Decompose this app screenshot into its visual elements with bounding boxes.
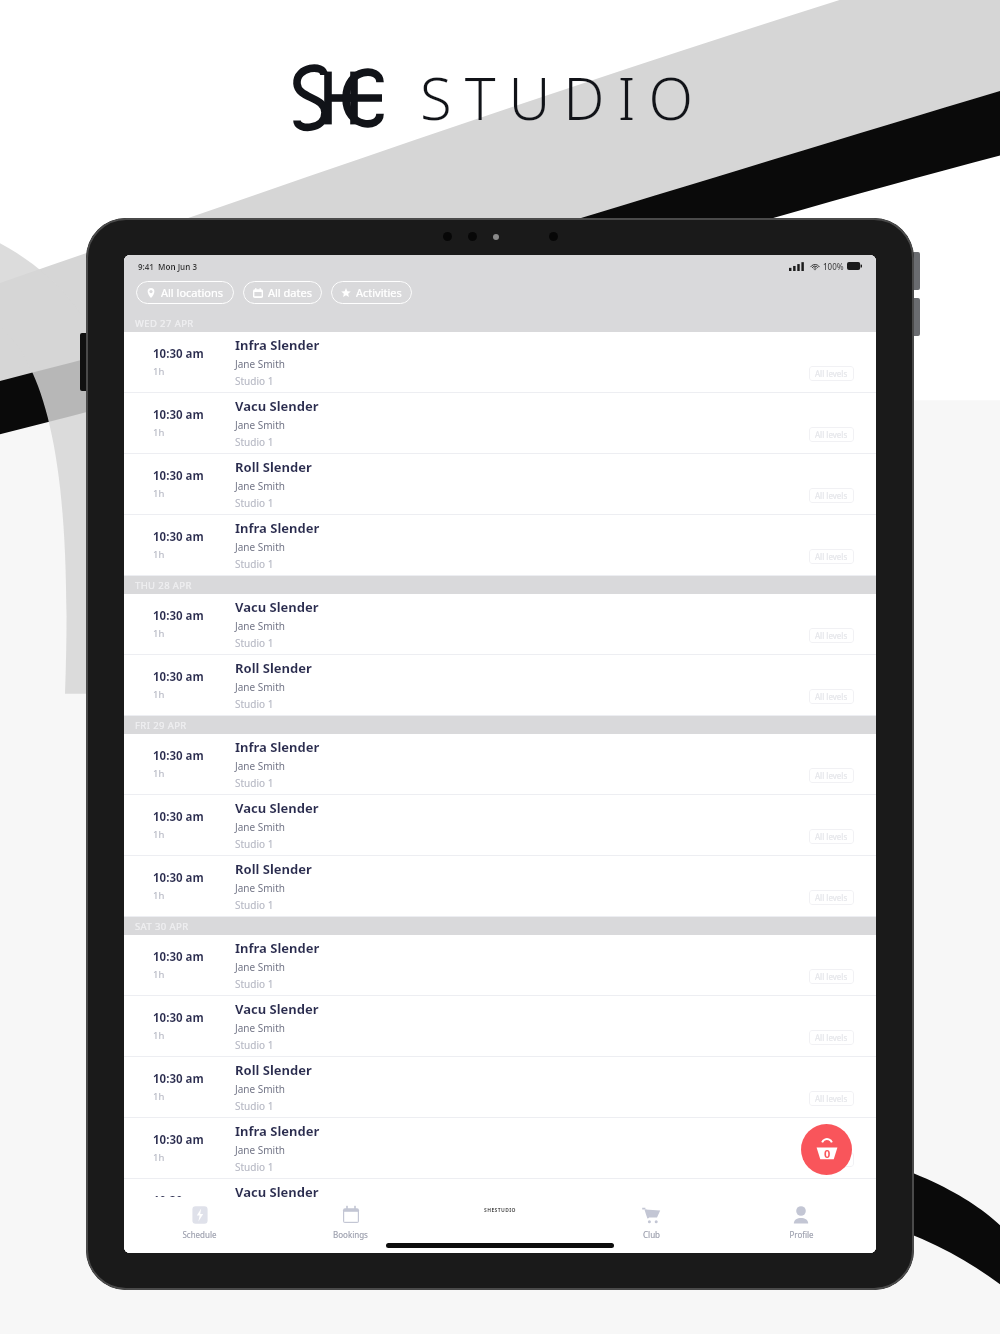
staticText: Jane Smith	[235, 1143, 285, 1157]
staticText: 10:30 am	[153, 468, 204, 484]
button[interactable]: All levels	[809, 628, 854, 643]
staticText: 1h	[153, 1090, 165, 1103]
staticText: Jane Smith	[235, 759, 285, 773]
staticText: Jane Smith	[235, 540, 285, 554]
staticText: All levels	[815, 1093, 848, 1104]
button[interactable]: All levels	[809, 768, 854, 783]
button[interactable]: 10:30 am	[124, 393, 876, 454]
staticText: 1h	[153, 426, 165, 439]
staticText: STUDIO	[420, 58, 706, 137]
button[interactable]: All levels	[809, 829, 854, 844]
button[interactable]: 10:30 am	[124, 454, 876, 515]
staticText: Vacu Slender	[235, 397, 319, 415]
staticText: 10:30 am	[153, 949, 204, 965]
button[interactable]: All levels	[809, 890, 854, 905]
staticText: 1h	[153, 365, 165, 378]
staticText: Studio 1	[235, 776, 274, 790]
staticText: 9:41 Mon Jun 3	[138, 261, 197, 272]
staticText: 10:30 am	[153, 748, 204, 764]
button[interactable]: 10:30 am	[124, 856, 876, 917]
staticText: Club	[643, 1229, 660, 1240]
button[interactable]: All levels	[809, 1030, 854, 1045]
button[interactable]: 10:30 am	[124, 594, 876, 655]
staticText: All levels	[815, 490, 848, 501]
button[interactable]: 10:30 am	[124, 515, 876, 576]
button[interactable]: SHE Studio home	[477, 1187, 523, 1233]
button[interactable]: 10:30 am	[124, 795, 876, 856]
button[interactable]: 10:30 am	[124, 655, 876, 716]
button[interactable]: 10:30 am	[124, 1179, 876, 1240]
button[interactable]: 10:30 am	[124, 996, 876, 1057]
staticText: 10:30 am	[153, 809, 204, 825]
staticText: All levels	[815, 1032, 848, 1043]
staticText: All locations	[161, 285, 224, 300]
staticText: Jane Smith	[235, 881, 285, 895]
button[interactable]: Schedule	[124, 1197, 275, 1253]
staticText: 1h	[153, 1151, 165, 1164]
staticText: 1h	[153, 487, 165, 500]
staticText: 1h	[153, 627, 165, 640]
staticText: All levels	[815, 971, 848, 982]
button[interactable]: All levels	[809, 427, 854, 442]
staticText: Schedule	[182, 1229, 217, 1240]
staticText: 10:30 am	[153, 407, 204, 423]
staticText: All levels	[815, 551, 848, 562]
button[interactable]: All dates	[243, 281, 322, 304]
button[interactable]: All levels	[809, 689, 854, 704]
staticText: 0	[824, 1146, 831, 1161]
staticText: 1h	[153, 889, 165, 902]
button[interactable]: Activities	[331, 281, 412, 304]
button[interactable]: All levels	[809, 366, 854, 381]
staticText: 100%	[823, 261, 844, 272]
staticText: Studio 1	[235, 636, 274, 650]
staticText: Studio 1	[235, 1160, 274, 1174]
staticText: All levels	[815, 630, 848, 641]
staticText: Roll Slender	[235, 1061, 312, 1079]
button[interactable]: All levels	[809, 549, 854, 564]
button[interactable]: 10:30 am	[124, 1057, 876, 1118]
staticText: Roll Slender	[235, 458, 312, 476]
button[interactable]: Basket, 0 items	[801, 1124, 852, 1175]
button[interactable]: All levels	[809, 969, 854, 984]
staticText: 10:30 am	[153, 870, 204, 886]
staticText: SAT 30 APR	[135, 920, 189, 933]
staticText: Jane Smith	[235, 1021, 285, 1035]
staticText: Infra Slender	[235, 939, 320, 957]
staticText: Infra Slender	[235, 336, 320, 354]
staticText: Activities	[356, 285, 402, 300]
button[interactable]: All levels	[809, 1091, 854, 1106]
staticText: 1h	[153, 968, 165, 981]
button[interactable]: Club	[576, 1197, 726, 1253]
staticText: 1h	[153, 688, 165, 701]
staticText: Jane Smith	[235, 357, 285, 371]
button[interactable]: All levels	[809, 488, 854, 503]
staticText: Studio 1	[235, 374, 274, 388]
button[interactable]: All locations	[136, 281, 234, 304]
button[interactable]: 10:30 am	[124, 332, 876, 393]
staticText: All levels	[815, 691, 848, 702]
staticText: Vacu Slender	[235, 1183, 319, 1201]
button[interactable]: All levels	[809, 1152, 854, 1167]
staticText: 10:30 am	[153, 608, 204, 624]
staticText: 10:30 am	[153, 1193, 204, 1209]
button[interactable]: Profile	[726, 1197, 876, 1253]
button[interactable]: 10:30 am	[124, 1118, 876, 1179]
button[interactable]: 10:30 am	[124, 935, 876, 996]
staticText: WED 27 APR	[135, 317, 194, 330]
staticText: 1h	[153, 548, 165, 561]
button[interactable]: Bookings	[275, 1197, 426, 1253]
staticText: Studio 1	[235, 697, 274, 711]
staticText: 1h	[153, 767, 165, 780]
staticText: All levels	[815, 831, 848, 842]
button[interactable]: 10:30 am	[124, 734, 876, 795]
staticText: Studio 1	[235, 557, 274, 571]
staticText: Infra Slender	[235, 1122, 320, 1140]
staticText: 1h	[153, 1029, 165, 1042]
staticText: Roll Slender	[235, 659, 312, 677]
staticText: Jane Smith	[235, 1082, 285, 1096]
staticText: All dates	[268, 285, 312, 300]
